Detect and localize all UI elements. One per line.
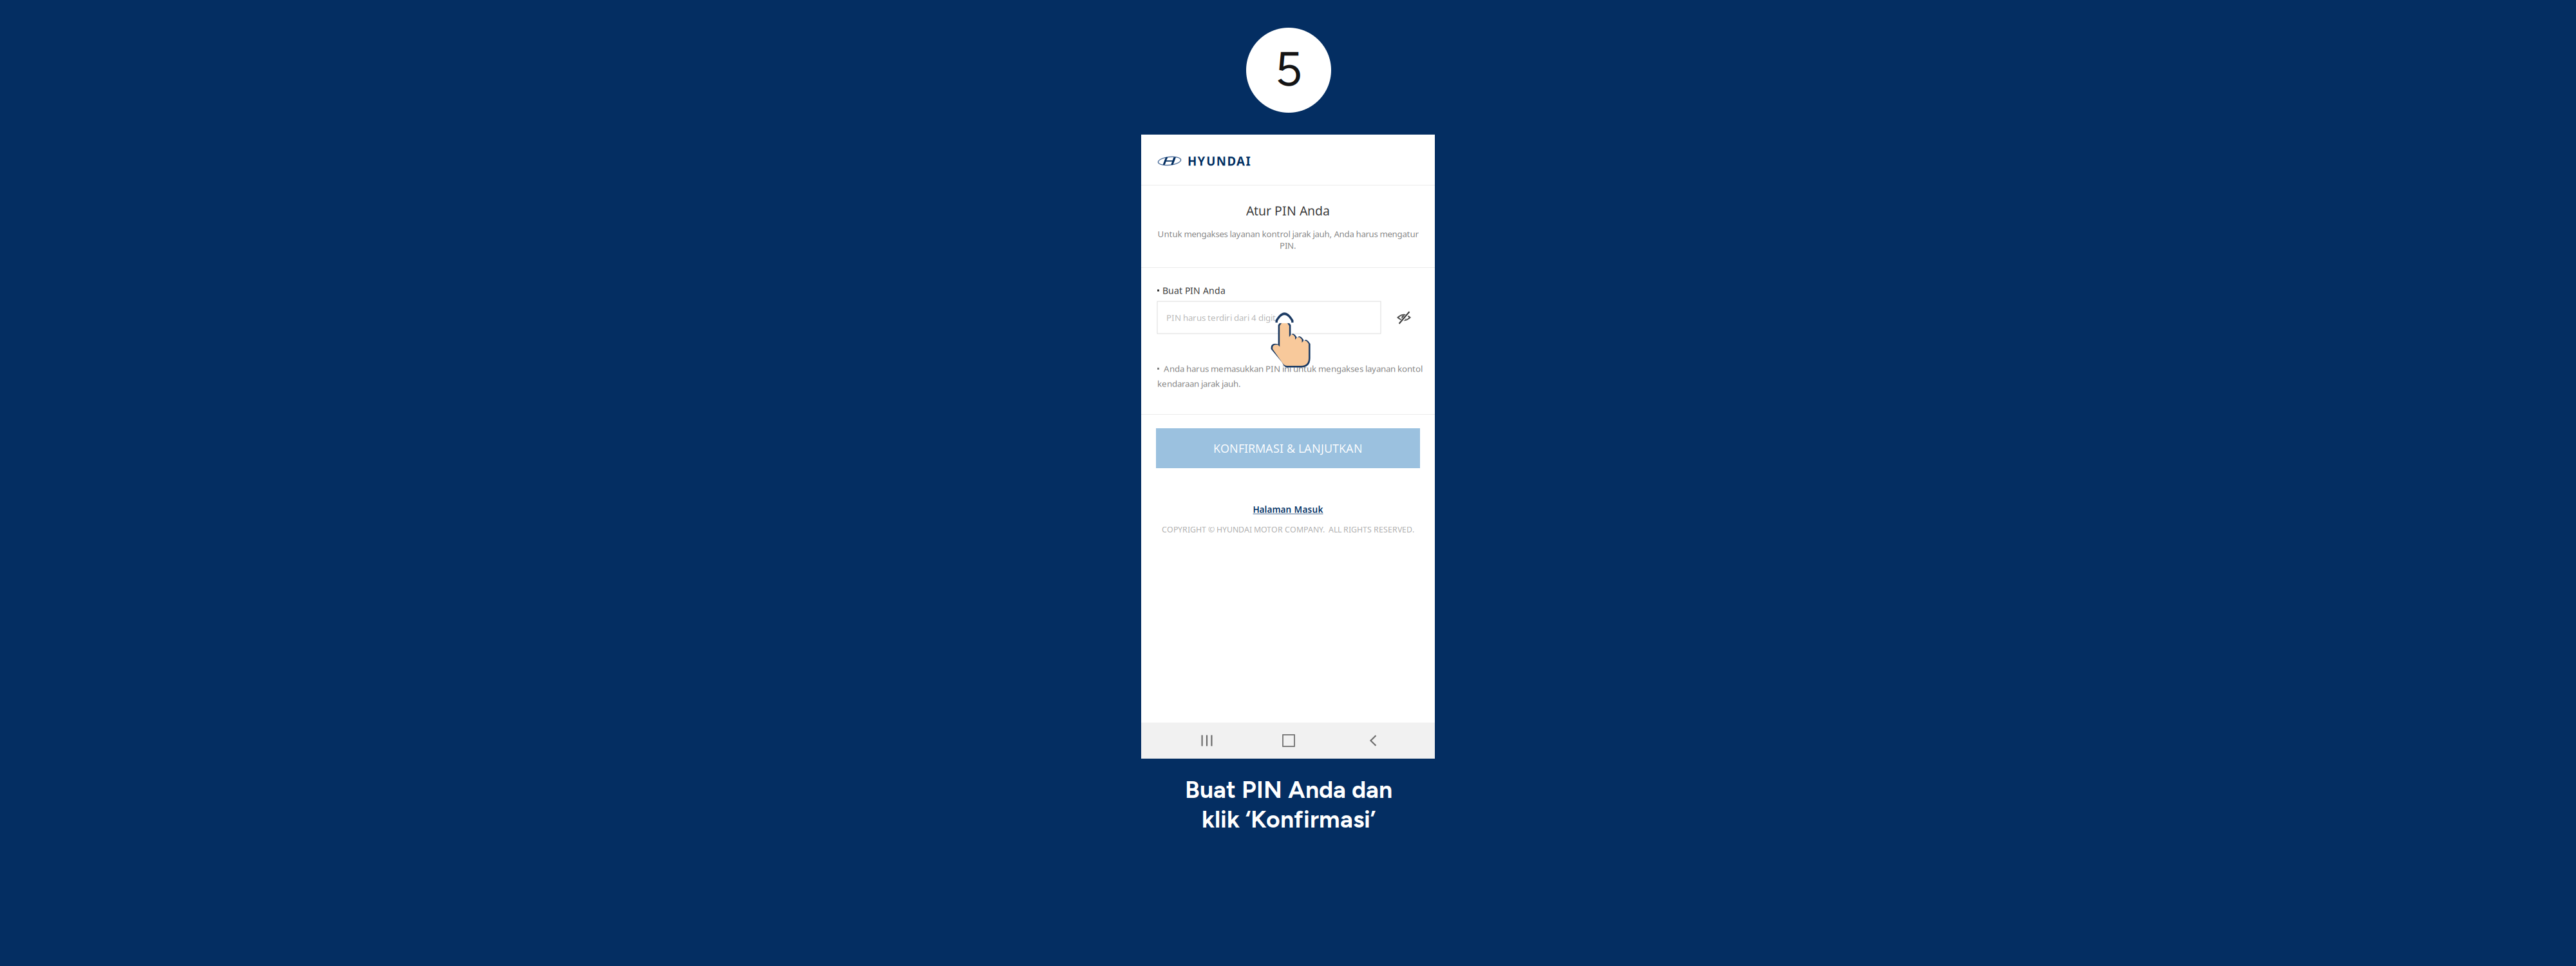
staticText: Halaman Masuk	[1253, 503, 1323, 515]
button[interactable]: Halaman Masuk	[1253, 503, 1323, 515]
staticText: COPYRIGHT © HYUNDAI MOTOR COMPANY. ALL R…	[1162, 524, 1414, 535]
staticText: Untuk mengakses layanan kontrol jarak ja…	[1158, 228, 1418, 240]
staticText: Atur PIN Anda	[1246, 202, 1330, 219]
staticText: 5	[1275, 41, 1302, 97]
staticText: Buat PIN Anda dan	[1185, 775, 1392, 804]
button[interactable]: Recent apps	[1187, 723, 1227, 759]
staticText: PIN harus terdiri dari 4 digit	[1166, 312, 1276, 323]
staticText: klik ‘Konfirmasi’	[1202, 805, 1376, 834]
button[interactable]: Show PIN	[1396, 310, 1412, 325]
staticText: HYUNDAI	[1188, 153, 1250, 169]
staticText: Anda harus memasukkan PIN ini untuk meng…	[1164, 363, 1423, 374]
staticText: PIN.	[1280, 240, 1296, 251]
staticText: kendaraan jarak jauh.	[1157, 378, 1241, 389]
staticText: KONFIRMASI & LANJUTKAN	[1213, 440, 1363, 456]
staticText: Buat PIN Anda	[1162, 284, 1226, 297]
button[interactable]: Home	[1269, 723, 1309, 759]
button[interactable]: Back	[1353, 723, 1393, 759]
button[interactable]: KONFIRMASI & LANJUTKAN	[1156, 428, 1420, 468]
